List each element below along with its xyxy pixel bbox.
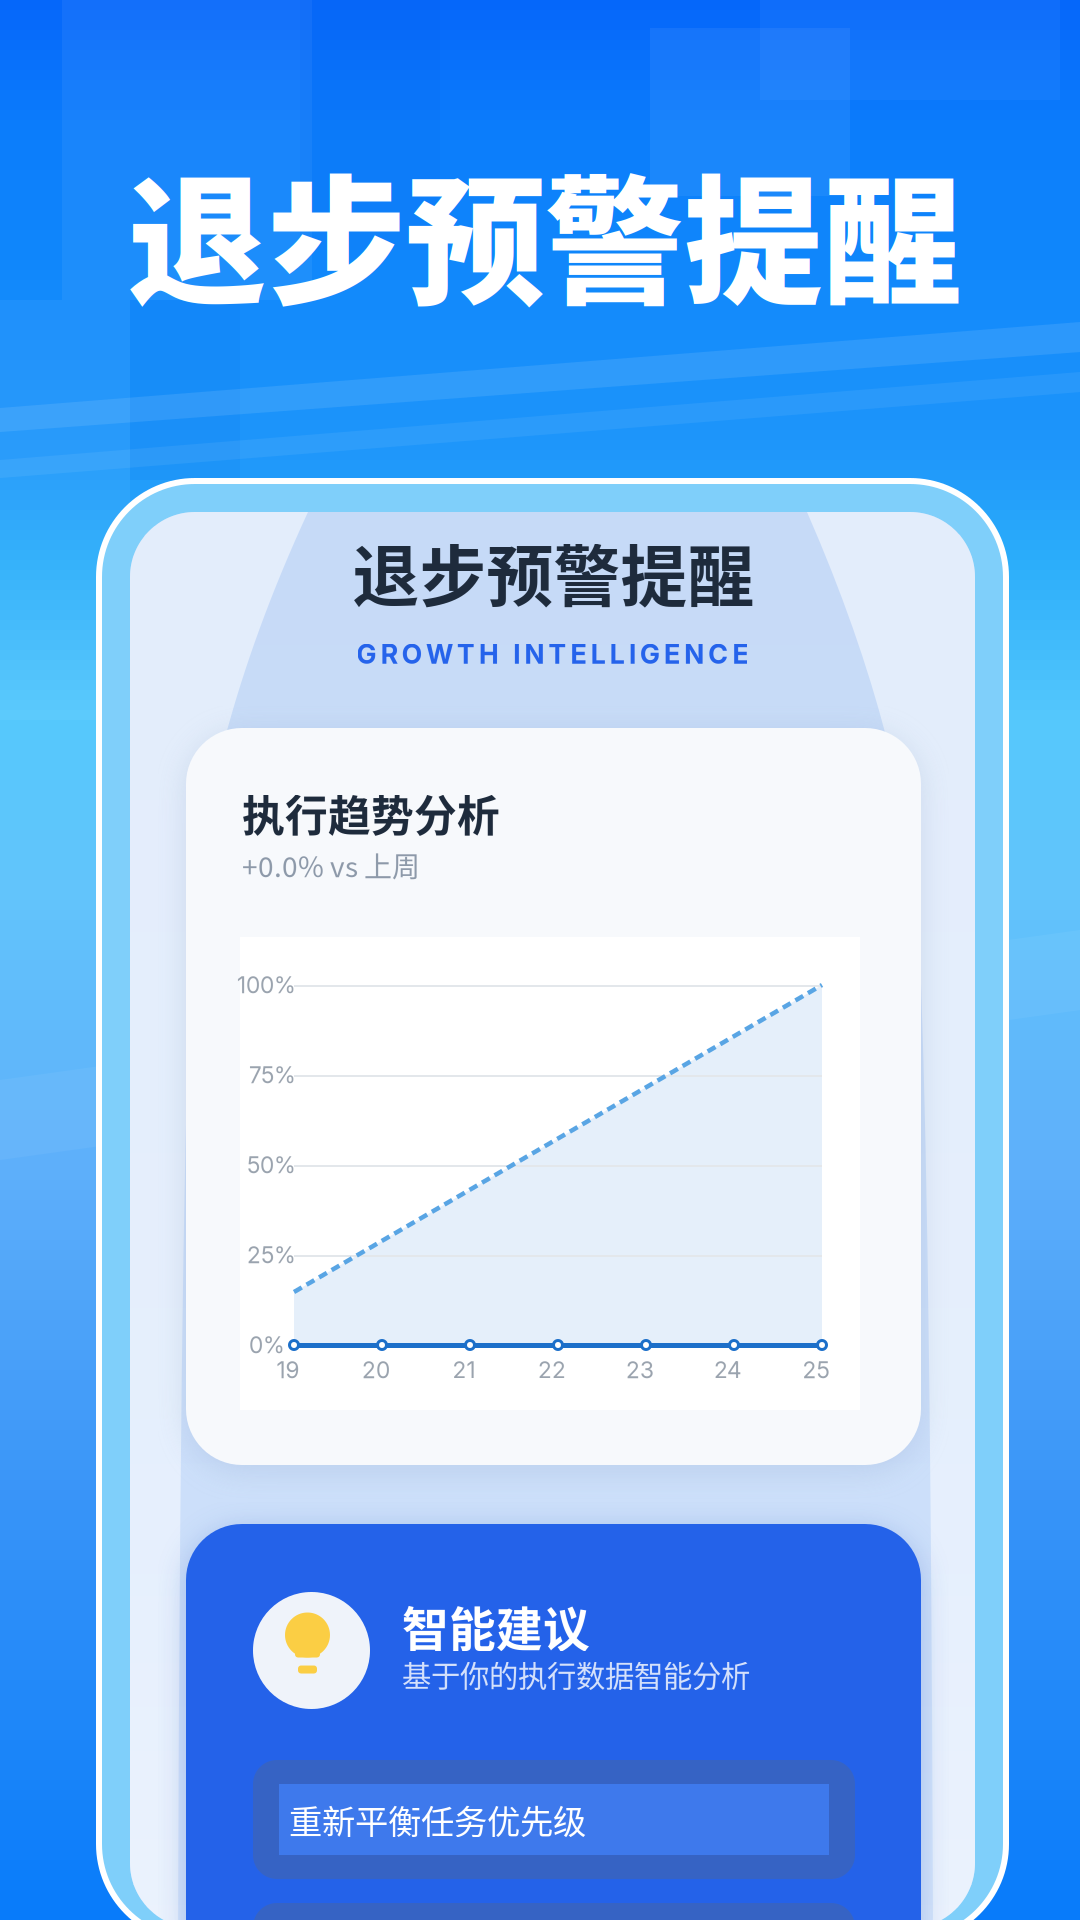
staticText: 执行趋势分析 <box>242 782 500 844</box>
staticText: 智能建议 <box>402 1592 590 1660</box>
staticText: +0.0% vs 上周 <box>242 845 420 885</box>
staticText: 退步预警提醒 <box>352 524 754 620</box>
staticText: 21 <box>452 1356 475 1384</box>
button[interactable]: 设置每日提醒时间 <box>253 1903 855 1920</box>
staticText: 19 <box>276 1356 299 1384</box>
staticText: 22 <box>538 1356 566 1384</box>
staticText: 基于你的执行数据智能分析 <box>402 1653 750 1695</box>
staticText: 20 <box>362 1356 390 1384</box>
staticText: 24 <box>714 1356 742 1384</box>
staticText: 75% <box>249 1061 296 1089</box>
staticText: 25% <box>247 1241 296 1269</box>
staticText: 25 <box>802 1356 829 1384</box>
staticText: 100% <box>237 971 296 999</box>
staticText: 50% <box>247 1151 296 1179</box>
staticText: 退步预警提醒 <box>128 132 962 332</box>
staticText: GROWTH INTELLIGENCE <box>357 638 748 670</box>
staticText: 0% <box>249 1331 285 1359</box>
button[interactable]: 重新平衡任务优先级 <box>253 1760 855 1879</box>
staticText: 23 <box>626 1356 654 1384</box>
staticText: 重新平衡任务优先级 <box>289 1795 586 1844</box>
